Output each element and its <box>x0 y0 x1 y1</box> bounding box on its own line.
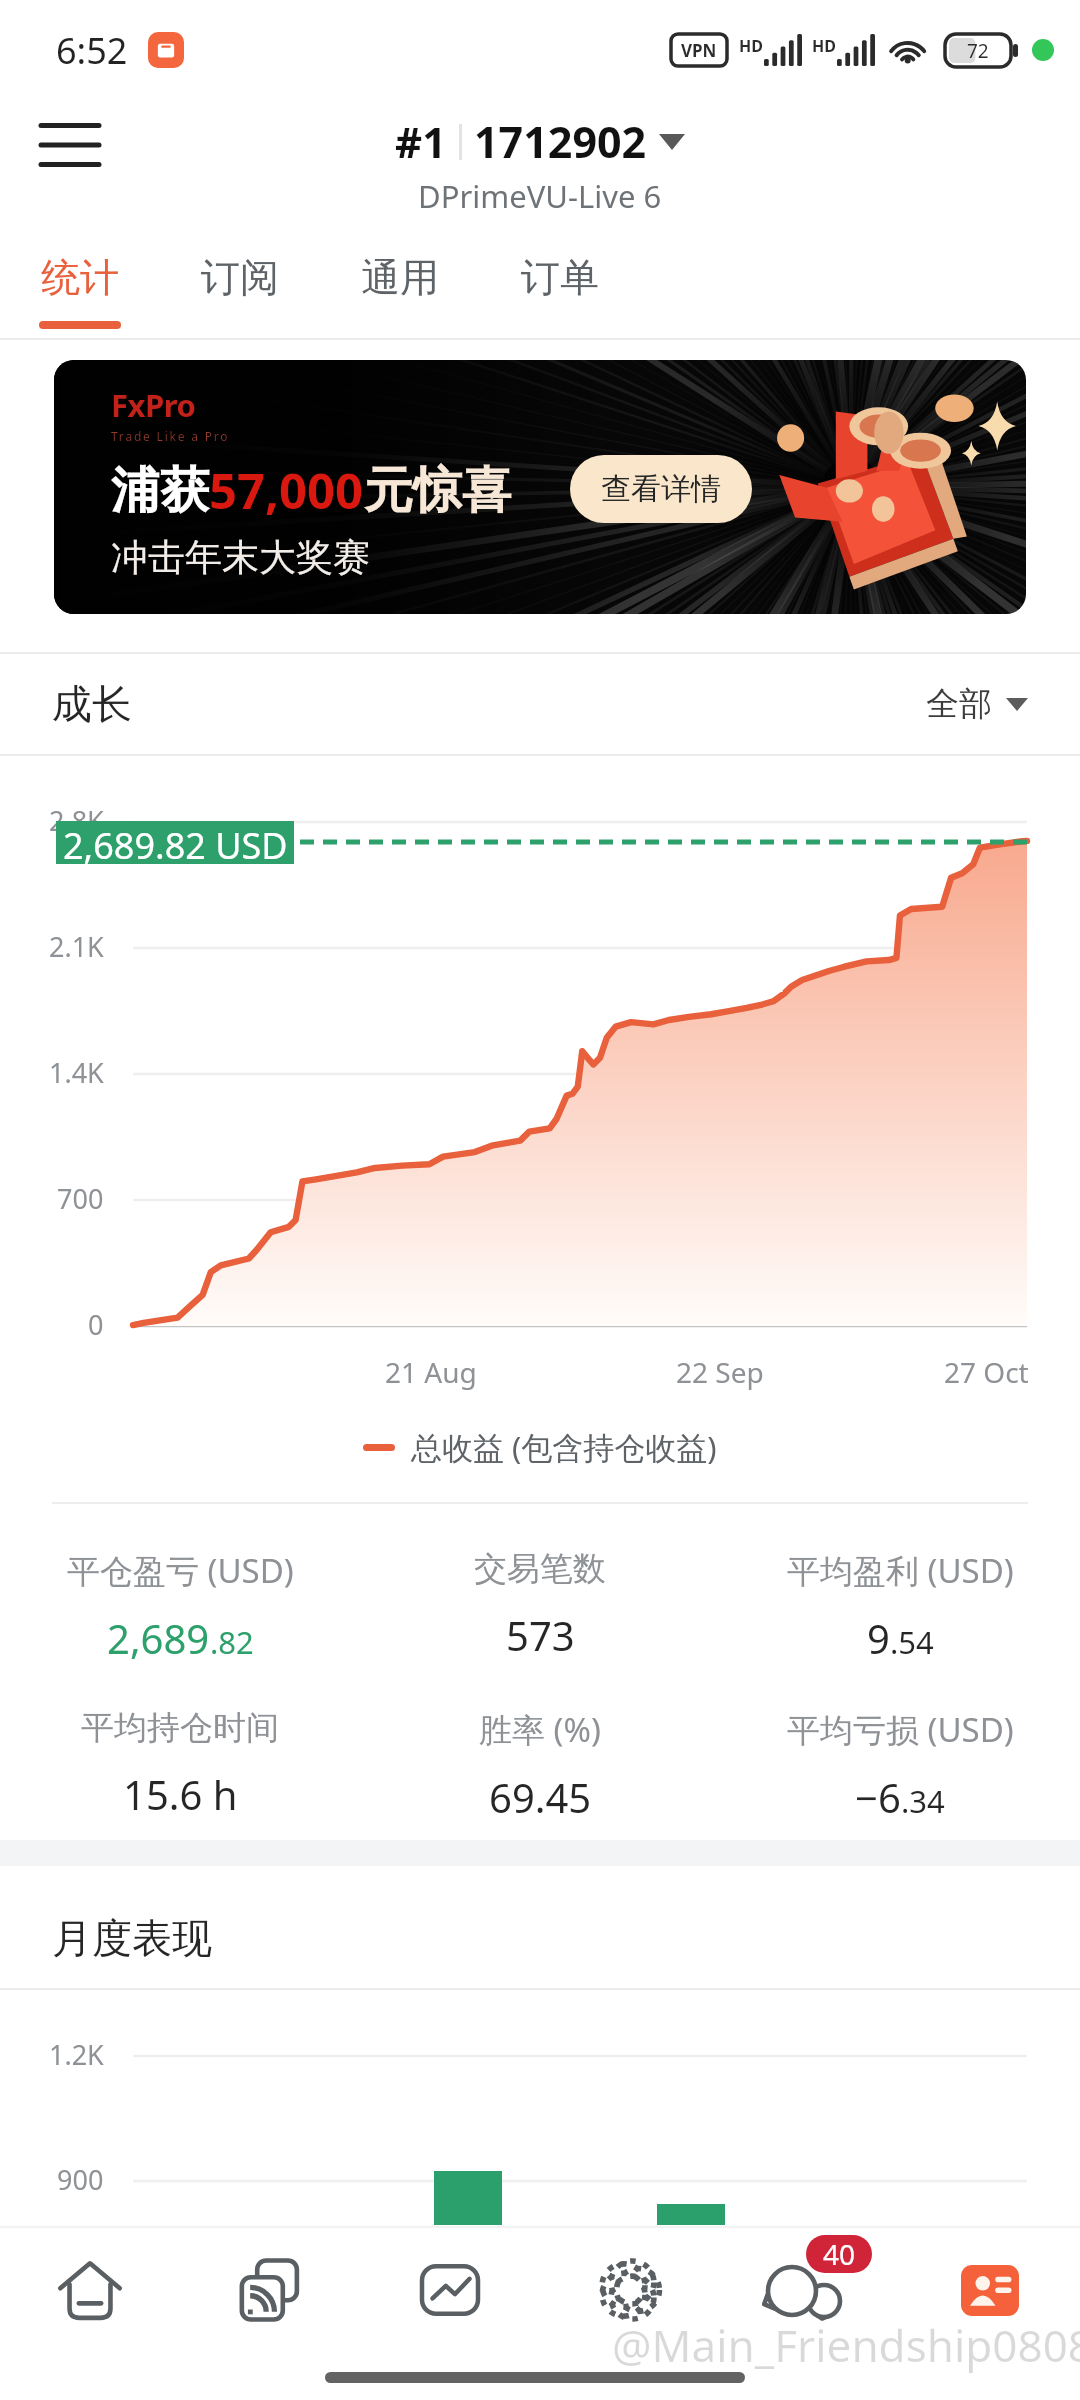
staticText: VPN <box>681 39 717 62</box>
staticText: 40 <box>823 2235 856 2273</box>
staticText: .34 <box>901 1780 945 1822</box>
button[interactable]: 统计 <box>20 240 140 340</box>
staticText: 总收益 (包含持仓收益) <box>411 1426 717 1468</box>
staticText: 平均亏损 (USD) <box>787 1707 1014 1752</box>
staticText: FxPro <box>111 384 196 426</box>
staticText: 浦获 <box>111 460 209 522</box>
staticText: 2.8K <box>49 802 104 839</box>
staticText: 6:52 <box>56 26 128 75</box>
button[interactable]: 订单 <box>500 240 620 340</box>
staticText: 统计 <box>41 253 119 302</box>
staticText: 订单 <box>521 253 599 302</box>
button[interactable]: Home <box>0 2228 180 2352</box>
staticText: 1.2K <box>49 2036 104 2073</box>
button[interactable]: FxPro <box>54 360 1026 614</box>
button[interactable]: Messages <box>720 2228 900 2352</box>
staticText: 全部 <box>926 683 992 725</box>
staticText: 成长 <box>52 679 132 729</box>
button[interactable]: Menu <box>28 108 112 182</box>
staticText: 27 Oct <box>944 1353 1029 1391</box>
staticText: 通用 <box>361 253 439 302</box>
button[interactable]: Profile <box>900 2228 1080 2352</box>
staticText: 2.1K <box>49 928 104 965</box>
staticText: @Main_Friendship0808 <box>612 2315 1080 2375</box>
button[interactable]: #1 <box>395 112 685 217</box>
staticText: HD <box>739 35 763 57</box>
staticText: −6 <box>855 1770 901 1824</box>
button[interactable]: Discover <box>540 2228 720 2352</box>
staticText: .82 <box>210 1621 254 1663</box>
staticText: 订阅 <box>201 253 279 302</box>
staticText: 900 <box>57 2161 104 2198</box>
staticText: 15.6 h <box>123 1767 238 1821</box>
staticText: 69.45 <box>489 1770 592 1824</box>
staticText: 胜率 (%) <box>479 1707 601 1752</box>
staticText: 9 <box>867 1611 890 1665</box>
staticText: 平仓盈亏 (USD) <box>67 1548 294 1593</box>
staticText: 1.4K <box>49 1054 104 1091</box>
staticText: DPrimeVU-Live 6 <box>418 175 662 217</box>
staticText: 57,000 <box>209 457 364 524</box>
staticText: HD <box>812 35 836 57</box>
staticText: 2,689 <box>107 1611 210 1665</box>
button[interactable]: Signals <box>180 2228 360 2352</box>
staticText: 2,689.82 USD <box>63 821 288 864</box>
button[interactable]: 订阅 <box>180 240 300 340</box>
staticText: 月度表现 <box>52 1913 212 1963</box>
staticText: 查看详情 <box>601 470 721 508</box>
staticText: 平均盈利 (USD) <box>787 1548 1014 1593</box>
staticText: 交易笔数 <box>474 1548 606 1590</box>
staticText: 22 Sep <box>676 1353 764 1391</box>
staticText: .54 <box>890 1621 934 1663</box>
button[interactable]: 查看详情 <box>570 455 752 523</box>
staticText: 平均持仓时间 <box>81 1707 279 1749</box>
button[interactable]: 通用 <box>340 240 460 340</box>
staticText: 72 <box>967 38 989 64</box>
button[interactable]: Statistics <box>360 2228 540 2352</box>
staticText: Trade Like a Pro <box>111 428 230 444</box>
staticText: 0 <box>88 1306 104 1343</box>
staticText: 21 Aug <box>385 1353 477 1391</box>
staticText: 573 <box>506 1608 575 1662</box>
staticText: 1712902 <box>474 112 647 171</box>
staticText: 元惊喜 <box>364 460 511 522</box>
button[interactable]: 全部 <box>926 683 1028 725</box>
staticText: #1 <box>395 113 447 170</box>
staticText: 700 <box>57 1180 104 1217</box>
staticText: 冲击年末大奖赛 <box>111 534 370 581</box>
